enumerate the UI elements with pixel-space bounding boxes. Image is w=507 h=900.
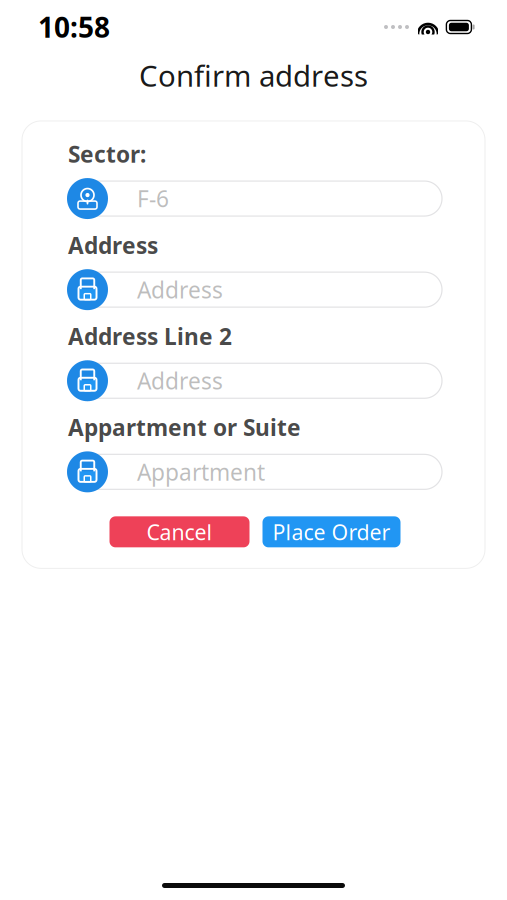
staticText: 10:58 — [38, 8, 110, 46]
staticText: F-6 — [137, 183, 169, 214]
staticText: Place Order — [272, 518, 390, 546]
button[interactable]: Address — [68, 269, 442, 310]
staticText: Cancel — [146, 518, 212, 546]
button[interactable]: Appartment — [68, 451, 442, 492]
button[interactable]: F-6 — [68, 178, 442, 219]
button[interactable]: Address — [68, 360, 442, 401]
button[interactable]: Place Order — [262, 516, 400, 547]
staticText: Address — [137, 366, 223, 396]
staticText: Address — [68, 230, 158, 260]
staticText: Appartment — [137, 457, 265, 487]
staticText: Sector: — [68, 139, 146, 169]
staticText: Appartment or Suite — [68, 412, 301, 442]
staticText: Address — [137, 275, 223, 305]
staticText: Address Line 2 — [68, 321, 232, 351]
button[interactable]: Cancel — [109, 516, 249, 547]
staticText: Confirm address — [139, 56, 368, 95]
